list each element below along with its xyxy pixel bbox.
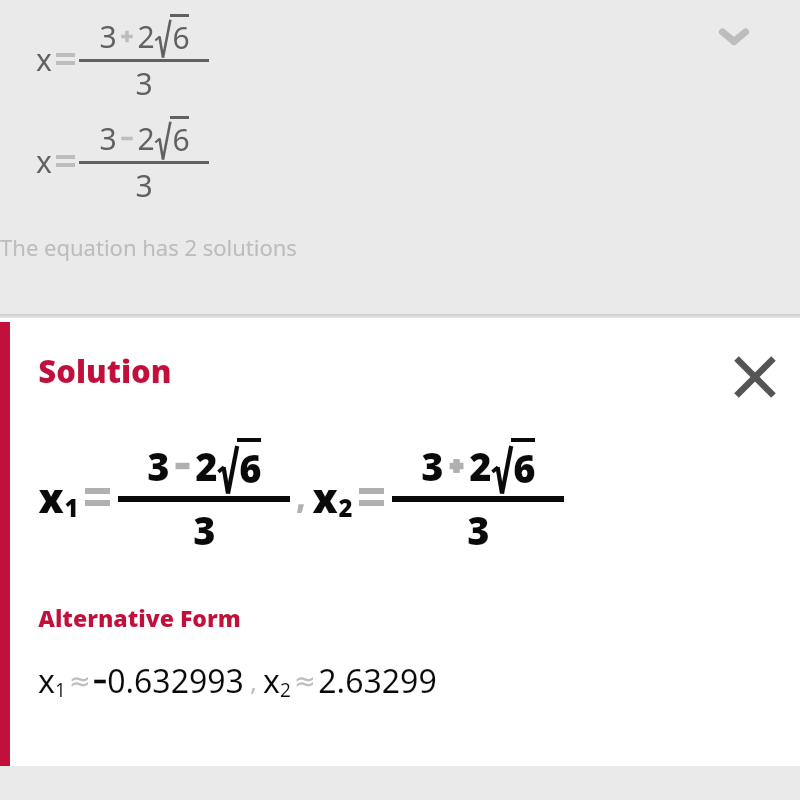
staticText: 6 xyxy=(513,442,536,494)
staticText: 6 xyxy=(172,119,190,160)
staticText: 6 xyxy=(239,442,262,494)
staticText: Alternative Form xyxy=(38,602,241,633)
staticText: 6 xyxy=(172,17,190,58)
staticText: ≈ xyxy=(294,666,316,696)
staticText: 2 xyxy=(137,16,155,57)
staticText: 3 xyxy=(193,504,216,556)
staticText: x xyxy=(312,470,338,524)
staticText: 3 xyxy=(99,118,117,159)
button[interactable]: Collapse xyxy=(706,8,762,64)
staticText: x xyxy=(36,141,52,182)
staticText: 3 xyxy=(135,165,153,206)
button[interactable]: Close xyxy=(724,346,786,408)
staticText: , xyxy=(250,665,257,698)
staticText: 2 xyxy=(137,118,155,159)
staticText: 3 xyxy=(135,63,153,104)
staticText: x xyxy=(36,39,52,80)
staticText: 3 xyxy=(99,16,117,57)
staticText: 2 xyxy=(195,440,218,492)
staticText: 1 xyxy=(55,677,66,703)
staticText: The equation has 2 solutions xyxy=(0,232,297,262)
staticText: 3 xyxy=(147,440,170,492)
staticText: 3 xyxy=(421,440,444,492)
staticText: 3 xyxy=(467,504,490,556)
staticText: ≈ xyxy=(69,666,91,696)
staticText: 1 xyxy=(64,491,79,524)
staticText: 0.632993 xyxy=(107,659,244,703)
button[interactable]: Alternative Form xyxy=(38,602,241,633)
staticText: 2 xyxy=(469,440,492,492)
staticText: , xyxy=(296,477,306,518)
button[interactable]: Solution xyxy=(38,350,172,392)
staticText: 2.63299 xyxy=(318,659,437,703)
staticText: 2 xyxy=(280,677,291,703)
staticText: 2 xyxy=(338,491,353,524)
staticText: x xyxy=(38,659,55,703)
staticText: x xyxy=(263,659,280,703)
staticText: x xyxy=(38,470,64,524)
staticText: Solution xyxy=(38,350,172,392)
